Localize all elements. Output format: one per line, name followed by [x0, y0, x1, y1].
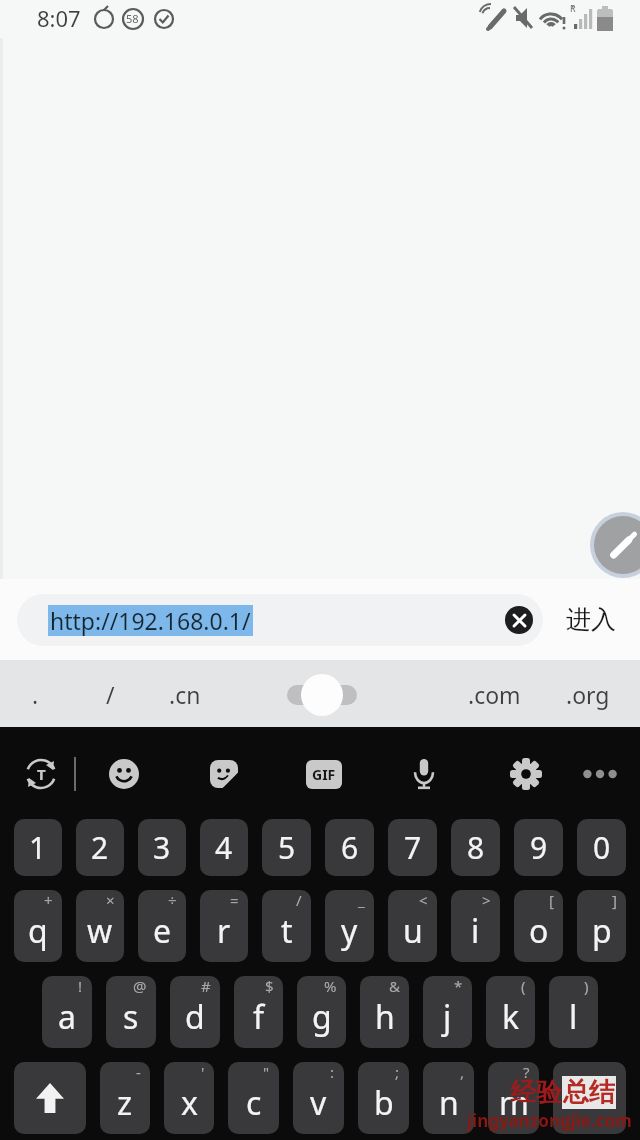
- staticText: ÷: [168, 890, 177, 910]
- button[interactable]: 0: [577, 819, 626, 876]
- button[interactable]: e: [138, 890, 186, 962]
- staticText: ]: [612, 890, 617, 910]
- staticText: T: [37, 764, 46, 784]
- staticText: 经验: [510, 1076, 562, 1109]
- button[interactable]: w: [76, 890, 124, 962]
- button[interactable]: GIF: [298, 748, 350, 800]
- button[interactable]: i: [451, 890, 500, 962]
- button[interactable]: [553, 1062, 626, 1134]
- button[interactable]: m: [488, 1062, 539, 1134]
- staticText: !: [78, 976, 83, 996]
- button[interactable]: v: [293, 1062, 344, 1134]
- staticText: 5: [278, 827, 296, 868]
- button[interactable]: .: [1, 665, 69, 723]
- staticText: .com: [468, 679, 521, 710]
- staticText: u: [403, 909, 423, 953]
- button[interactable]: 7: [388, 819, 437, 876]
- staticText: p: [592, 909, 612, 953]
- button[interactable]: n: [423, 1062, 474, 1134]
- staticText: 4: [215, 827, 233, 868]
- button[interactable]: l: [549, 976, 598, 1048]
- button[interactable]: a: [42, 976, 92, 1048]
- staticText: .cn: [169, 679, 201, 710]
- button[interactable]: 进入: [566, 604, 616, 635]
- button[interactable]: f: [234, 976, 283, 1048]
- staticText: a: [58, 995, 76, 1039]
- staticText: http://192.168.0.1/: [50, 605, 251, 636]
- button[interactable]: [505, 606, 533, 634]
- button[interactable]: [198, 748, 250, 800]
- button[interactable]: p: [577, 890, 626, 962]
- button[interactable]: q: [14, 890, 62, 962]
- button[interactable]: j: [423, 976, 472, 1048]
- staticText: 6: [341, 827, 359, 868]
- button[interactable]: z: [100, 1062, 150, 1134]
- staticText: 0: [593, 827, 611, 868]
- button[interactable]: [500, 748, 552, 800]
- button[interactable]: 8: [451, 819, 500, 876]
- button[interactable]: k: [486, 976, 535, 1048]
- staticText: ': [201, 1062, 205, 1082]
- button[interactable]: b: [358, 1062, 409, 1134]
- staticText: ": [263, 1062, 270, 1082]
- button[interactable]: t: [262, 890, 311, 962]
- staticText: 8: [467, 827, 485, 868]
- staticText: .org: [566, 679, 610, 710]
- staticText: 2: [91, 827, 109, 868]
- staticText: 9: [530, 827, 548, 868]
- staticText: n: [439, 1081, 459, 1125]
- staticText: /: [296, 890, 302, 910]
- staticText: q: [28, 909, 48, 953]
- button[interactable]: 9: [514, 819, 563, 876]
- button[interactable]: c: [228, 1062, 279, 1134]
- staticText: [: [549, 890, 554, 910]
- staticText: 58: [126, 11, 139, 26]
- staticText: 3: [153, 827, 171, 868]
- button[interactable]: [287, 685, 357, 705]
- button[interactable]: r: [200, 890, 248, 962]
- button[interactable]: [590, 512, 640, 578]
- staticText: o: [529, 909, 549, 953]
- button[interactable]: o: [514, 890, 563, 962]
- button[interactable]: y: [325, 890, 374, 962]
- staticText: x: [181, 1081, 198, 1125]
- staticText: jingyanzongjie.com: [467, 1109, 632, 1132]
- button[interactable]: h: [360, 976, 409, 1048]
- button[interactable]: [14, 1062, 86, 1134]
- staticText: <: [419, 890, 428, 910]
- staticText: .: [32, 679, 39, 710]
- staticText: r: [217, 909, 231, 953]
- button[interactable]: 4: [200, 819, 248, 876]
- button[interactable]: [574, 748, 626, 800]
- button[interactable]: s: [106, 976, 156, 1048]
- staticText: l: [569, 995, 578, 1039]
- button[interactable]: x: [164, 1062, 214, 1134]
- staticText: f: [253, 995, 265, 1039]
- button[interactable]: 2: [76, 819, 124, 876]
- button[interactable]: d: [170, 976, 220, 1048]
- button[interactable]: T: [15, 748, 67, 800]
- button[interactable]: .com: [460, 665, 528, 723]
- staticText: >: [482, 890, 491, 910]
- staticText: g: [312, 995, 332, 1039]
- staticText: i: [471, 909, 480, 953]
- button[interactable]: g: [297, 976, 346, 1048]
- staticText: ×: [106, 890, 115, 910]
- button[interactable]: 5: [262, 819, 311, 876]
- button[interactable]: .org: [554, 665, 622, 723]
- staticText: j: [443, 995, 452, 1039]
- button[interactable]: 3: [138, 819, 186, 876]
- button[interactable]: /: [76, 665, 144, 723]
- staticText: y: [341, 909, 358, 953]
- button[interactable]: 1: [14, 819, 62, 876]
- button[interactable]: u: [388, 890, 437, 962]
- staticText: 8:07: [37, 3, 81, 33]
- button[interactable]: 6: [325, 819, 374, 876]
- staticText: =: [230, 890, 239, 910]
- button[interactable]: .cn: [151, 665, 219, 723]
- button[interactable]: http://192.168.0.1/: [17, 594, 543, 646]
- button[interactable]: [98, 748, 150, 800]
- button[interactable]: [398, 748, 450, 800]
- staticText: e: [153, 909, 172, 953]
- staticText: %: [324, 976, 337, 996]
